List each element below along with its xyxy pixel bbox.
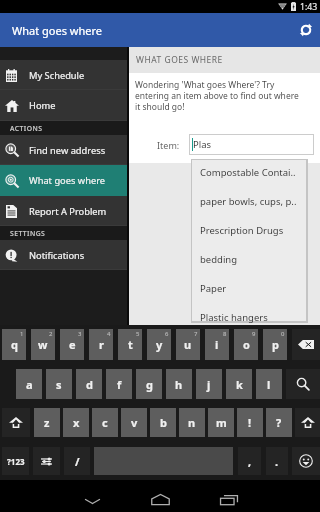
button[interactable]: b [150,408,176,437]
staticText: m [216,415,227,430]
button[interactable]: ?123 [2,447,29,475]
staticText: k [236,377,243,392]
button[interactable]: u [176,329,200,360]
staticText: / [75,454,80,469]
button[interactable]: c [92,408,118,437]
button[interactable]: s [46,369,72,399]
staticText: g [146,377,153,392]
button[interactable]: paper bowls, cups, p.. [192,187,306,216]
button[interactable]: Recents [199,486,259,512]
staticText: Wondering 'What goes Where'? Try enterin… [135,79,299,112]
staticText: 9 [252,330,256,338]
button[interactable]: w [31,329,55,360]
staticText: q [11,337,18,352]
staticText: x [73,415,80,430]
button[interactable]: Prescription Drugs [192,216,306,245]
button[interactable]: e [60,329,84,360]
staticText: 7 [194,330,198,338]
button[interactable]: y [147,329,171,360]
button[interactable]: Shift [2,408,30,437]
staticText: . [275,454,279,469]
button[interactable]: v [121,408,147,437]
staticText: , [248,454,252,469]
button[interactable]: , [238,447,261,475]
staticText: b [160,415,167,430]
button[interactable]: g [136,369,162,399]
staticText: Paper [200,282,227,295]
button[interactable]: n [179,408,205,437]
button[interactable]: Compostable Contai.. [192,158,306,187]
button[interactable]: p [263,329,287,360]
button[interactable]: What goes where [0,165,127,196]
button[interactable]: x [63,408,89,437]
staticText: e [69,337,76,352]
staticText: ACTIONS [10,124,43,133]
staticText: 0 [281,330,285,338]
staticText: What goes where [12,23,102,38]
staticText: a [26,377,33,392]
staticText: z [44,415,50,430]
button[interactable]: d [76,369,102,399]
staticText: u [184,337,192,352]
button[interactable]: j [196,369,222,399]
button[interactable]: Back [62,486,122,512]
button[interactable]: q [2,329,26,360]
button[interactable]: My Schedule [0,60,127,90]
button[interactable]: m [208,408,234,437]
button[interactable]: Plastic hangers [192,303,306,332]
staticText: h [175,377,183,392]
staticText: f [117,377,122,392]
button[interactable]: a [16,369,42,399]
button[interactable]: Home [0,90,127,121]
button[interactable]: l [256,369,282,399]
button[interactable]: Backspace [292,329,320,360]
button[interactable]: Report A Problem [0,196,127,226]
button[interactable]: i [205,329,229,360]
staticText: w [38,337,48,352]
button[interactable]: Shift [295,408,320,437]
staticText: s [56,377,62,392]
staticText: 1 [20,330,24,338]
staticText: 6 [165,330,169,338]
button[interactable]: Notifications [0,240,127,270]
staticText: i [215,337,219,352]
button[interactable]: h [166,369,192,399]
button[interactable]: ? [266,408,292,437]
button[interactable]: z [34,408,60,437]
button[interactable]: Refresh [292,16,320,44]
button[interactable]: o [234,329,258,360]
button[interactable]: Plas [189,134,314,155]
button[interactable]: r [89,329,113,360]
staticText: paper bowls, cups, p.. [200,195,297,208]
staticText: bedding [200,253,238,266]
button[interactable]: . [266,447,288,475]
staticText: Compostable Contai.. [200,166,296,179]
button[interactable]: Search [286,369,320,399]
staticText: 8 [223,330,227,338]
staticText: ?123 [7,456,25,467]
staticText: ! [248,415,252,430]
staticText: Plas [193,138,212,151]
button[interactable]: Paper [192,274,306,303]
button[interactable]: t [118,329,142,360]
button[interactable]: / [64,447,90,475]
staticText: 3 [78,330,82,338]
staticText: d [86,377,93,392]
button[interactable]: ! [237,408,263,437]
button[interactable]: bedding [192,245,306,274]
staticText: j [207,377,211,392]
staticText: r [99,337,104,352]
staticText: o [243,337,250,352]
button[interactable]: Emoji [292,447,320,475]
button[interactable]: Settings [33,447,60,475]
button[interactable]: Home [130,486,190,512]
staticText: 4 [107,330,111,338]
button[interactable]: k [226,369,252,399]
staticText: Plastic hangers [200,311,268,324]
staticText: v [131,415,138,430]
staticText: What goes where [29,174,106,187]
button[interactable]: f [106,369,132,399]
staticText: Home [29,99,56,112]
button[interactable]: Find new address [0,135,127,165]
